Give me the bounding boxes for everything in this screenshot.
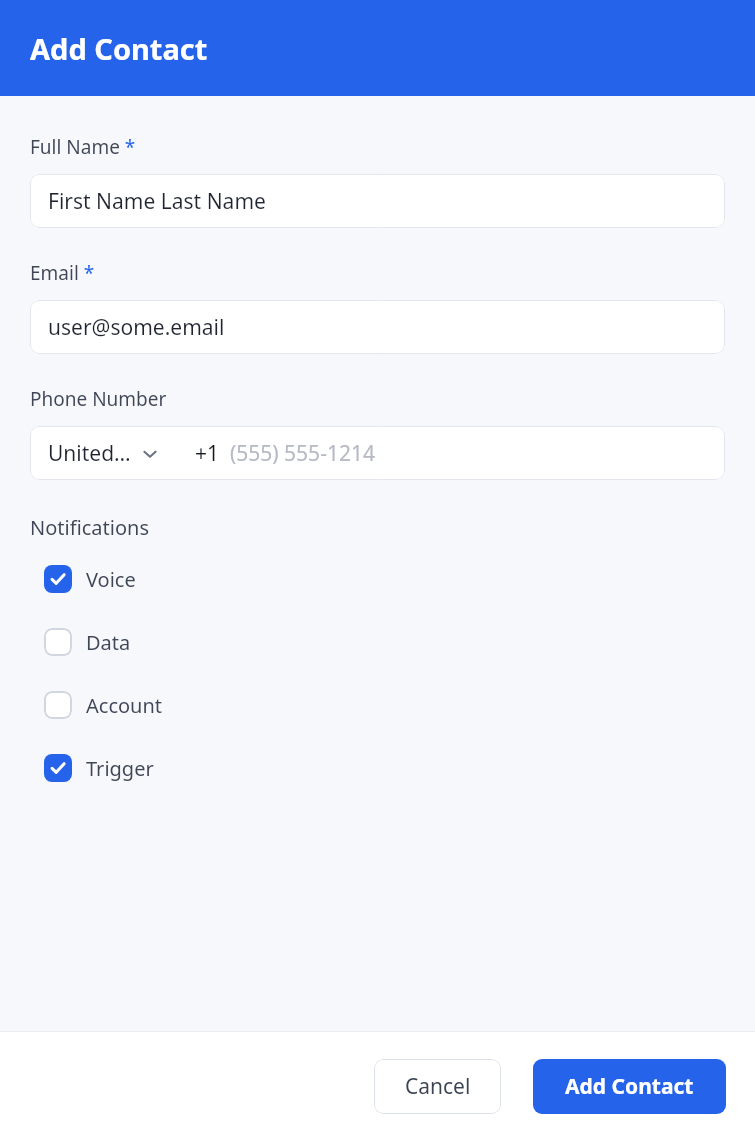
- staticText: user@some.email: [48, 313, 225, 342]
- button[interactable]: user@some.email: [30, 300, 725, 354]
- staticText: Notifications: [30, 514, 149, 541]
- staticText: Full Name *: [30, 134, 136, 160]
- staticText: Account: [86, 692, 163, 719]
- button[interactable]: Select country code: [46, 433, 159, 474]
- button[interactable]: Select country code: [30, 426, 725, 480]
- button[interactable]: Voice: [30, 561, 725, 597]
- button[interactable]: Trigger: [30, 750, 725, 786]
- button[interactable]: Account: [30, 687, 725, 723]
- staticText: United…: [48, 439, 131, 468]
- button[interactable]: First Name Last Name: [30, 174, 725, 228]
- staticText: Voice: [86, 566, 136, 593]
- staticText: +1: [195, 439, 220, 468]
- staticText: Cancel: [405, 1072, 471, 1101]
- staticText: First Name Last Name: [48, 187, 266, 216]
- button[interactable]: Cancel: [374, 1059, 501, 1114]
- staticText: Trigger: [86, 755, 154, 782]
- staticText: Phone Number: [30, 386, 167, 412]
- staticText: Add Contact: [30, 29, 208, 68]
- button[interactable]: Data: [30, 624, 725, 660]
- staticText: Data: [86, 629, 131, 656]
- button[interactable]: Add Contact: [533, 1059, 726, 1114]
- staticText: (555) 555-1214: [230, 439, 375, 468]
- staticText: Email *: [30, 260, 95, 286]
- staticText: Add Contact: [565, 1072, 694, 1101]
